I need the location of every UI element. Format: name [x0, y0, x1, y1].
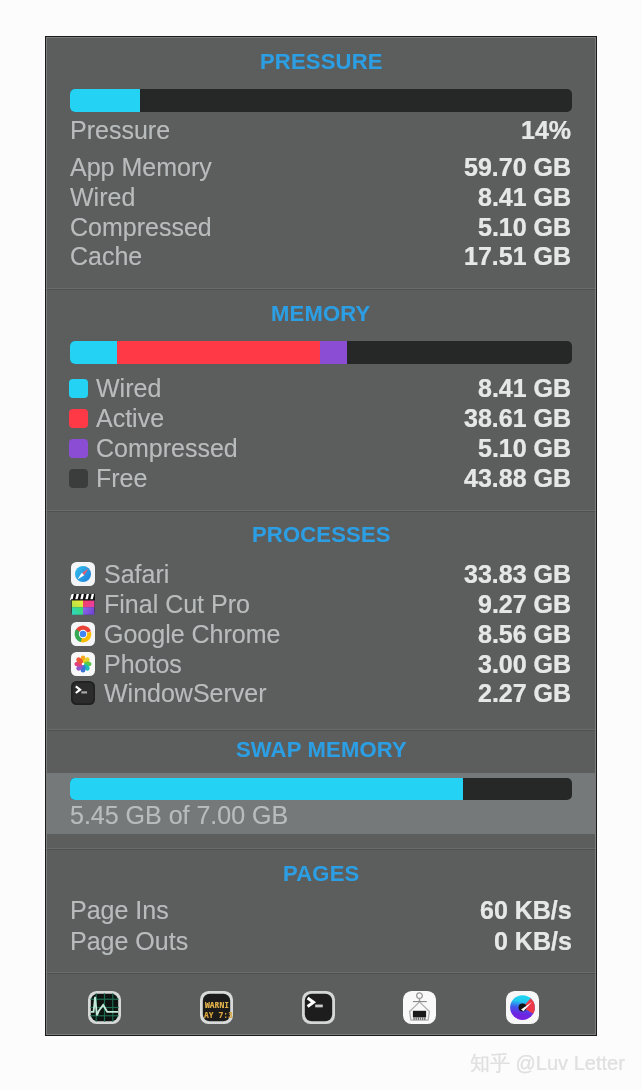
staticText: Safari — [104, 560, 170, 588]
staticText: Page Outs — [70, 927, 189, 955]
button[interactable]: Wired — [47, 182, 595, 212]
staticText: WindowServer — [104, 679, 267, 707]
staticText: AY 7:36 — [204, 1009, 233, 1020]
staticText: 14% — [521, 116, 572, 144]
staticText: 5.10 GB — [478, 213, 572, 241]
button[interactable]: Active — [47, 403, 595, 433]
staticText: Wired — [70, 183, 136, 211]
staticText: Cache — [70, 242, 143, 270]
button[interactable]: Free — [47, 463, 595, 493]
staticText: 知乎 @Luv Letter — [470, 1051, 625, 1076]
staticText: PRESSURE — [260, 49, 383, 74]
staticText: Compressed — [70, 213, 212, 241]
button[interactable]: Final Cut Pro — [47, 589, 595, 619]
button[interactable] — [47, 773, 595, 834]
staticText: Wired — [96, 374, 162, 402]
button[interactable]: Warnings — [200, 991, 233, 1024]
button[interactable]: Wired — [47, 373, 595, 403]
button[interactable]: Activity Monitor — [88, 991, 121, 1024]
staticText: MEMORY — [271, 301, 371, 326]
staticText: SWAP MEMORY — [236, 737, 407, 762]
staticText: Compressed — [96, 434, 238, 462]
staticText: Page Ins — [70, 896, 169, 924]
button[interactable]: Disk Gauge — [506, 991, 539, 1024]
button[interactable]: Google Chrome — [47, 619, 595, 649]
staticText: 38.61 GB — [464, 404, 572, 432]
staticText: 9.27 GB — [478, 590, 572, 618]
staticText: 5.45 GB of 7.00 GB — [70, 801, 289, 829]
staticText: PAGES — [283, 861, 360, 886]
button[interactable]: App Memory — [47, 152, 595, 182]
staticText: 33.83 GB — [464, 560, 572, 588]
staticText: 3.00 GB — [478, 650, 572, 678]
button[interactable]: Compressed — [47, 212, 595, 242]
staticText: Photos — [104, 650, 182, 678]
staticText: 43.88 GB — [464, 464, 572, 492]
staticText: Pressure — [70, 116, 171, 144]
button[interactable]: WindowServer — [47, 678, 595, 708]
staticText: Free — [96, 464, 148, 492]
button[interactable]: Page Ins — [47, 895, 595, 925]
staticText: App Memory — [70, 153, 212, 181]
button[interactable]: Safari — [47, 559, 595, 589]
staticText: PROCESSES — [252, 522, 391, 547]
staticText: Final Cut Pro — [104, 590, 250, 618]
button[interactable]: Page Outs — [47, 926, 595, 956]
button[interactable]: Terminal — [302, 991, 335, 1024]
button[interactable]: Pressure — [47, 115, 595, 145]
staticText: 60 KB/s — [480, 896, 572, 924]
staticText: 0 KB/s — [494, 927, 572, 955]
staticText: WARNI — [205, 999, 229, 1010]
staticText: 8.41 GB — [478, 183, 572, 211]
button[interactable]: Photos — [47, 649, 595, 679]
button[interactable]: Cache — [47, 241, 595, 271]
staticText: 17.51 GB — [464, 242, 572, 270]
staticText: Active — [96, 404, 165, 432]
staticText: 59.70 GB — [464, 153, 572, 181]
staticText: Google Chrome — [104, 620, 281, 648]
staticText: 8.56 GB — [478, 620, 572, 648]
button[interactable]: Compressed — [47, 433, 595, 463]
staticText: 8.41 GB — [478, 374, 572, 402]
staticText: 2.27 GB — [478, 679, 572, 707]
staticText: 5.10 GB — [478, 434, 572, 462]
button[interactable]: Memory Cleaner — [403, 991, 436, 1024]
